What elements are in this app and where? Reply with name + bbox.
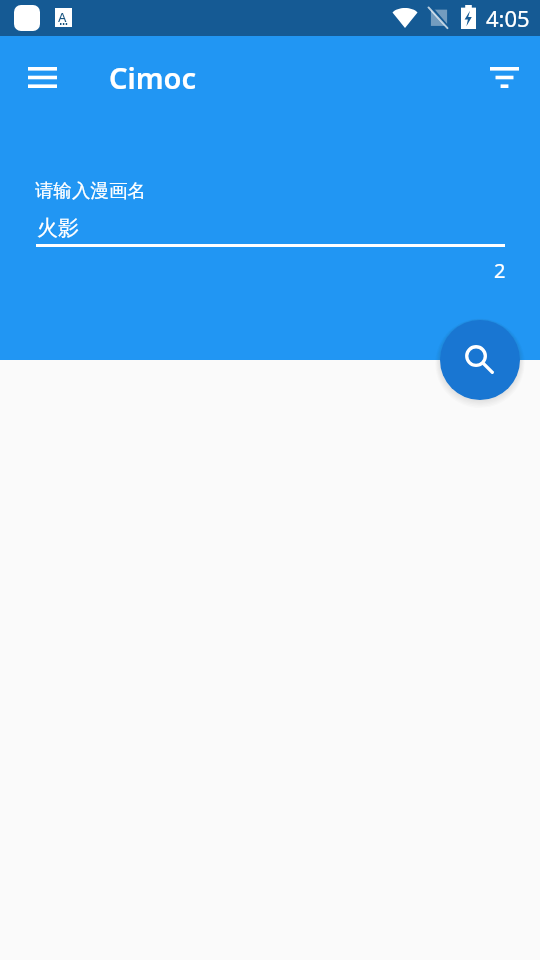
- staticText: 2: [494, 257, 506, 284]
- button[interactable]: 请输入漫画名: [30, 172, 510, 252]
- staticText: 火影: [37, 215, 79, 241]
- button[interactable]: Filter: [482, 55, 526, 99]
- button[interactable]: Menu: [20, 55, 64, 99]
- staticText: Cimoc: [109, 58, 197, 97]
- button[interactable]: Search: [440, 320, 520, 400]
- staticText: A: [58, 8, 67, 26]
- staticText: 4:05: [486, 3, 530, 33]
- staticText: 请输入漫画名: [35, 179, 146, 202]
